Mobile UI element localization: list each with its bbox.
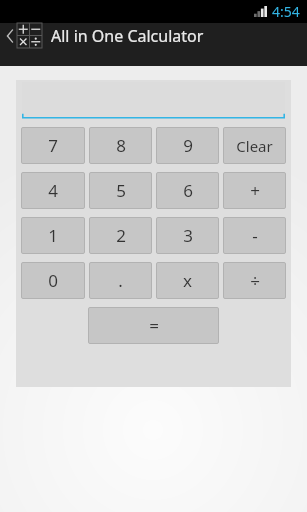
- button[interactable]: Navigate up, All in One Calculator: [6, 23, 307, 48]
- button[interactable]: 5: [89, 172, 152, 209]
- staticText: ÷: [250, 269, 260, 292]
- staticText: 5: [116, 179, 126, 202]
- button[interactable]: +: [223, 172, 286, 209]
- staticText: +: [250, 179, 260, 202]
- button[interactable]: 2: [89, 217, 152, 254]
- staticText: =: [149, 314, 159, 337]
- button[interactable]: .: [89, 262, 152, 299]
- button[interactable]: 8: [89, 127, 152, 164]
- staticText: 6: [183, 179, 193, 202]
- button[interactable]: x: [156, 262, 219, 299]
- staticText: All in One Calculator: [51, 25, 204, 47]
- staticText: 4: [48, 179, 58, 202]
- staticText: 8: [116, 134, 126, 157]
- button[interactable]: ÷: [223, 262, 286, 299]
- staticText: 4:54: [272, 2, 300, 21]
- button[interactable]: [22, 82, 285, 119]
- button[interactable]: Clear: [223, 127, 286, 164]
- staticText: 7: [48, 134, 58, 157]
- staticText: Clear: [236, 136, 273, 156]
- button[interactable]: 6: [156, 172, 219, 209]
- button[interactable]: =: [88, 307, 219, 344]
- button[interactable]: 3: [156, 217, 219, 254]
- staticText: .: [118, 269, 123, 292]
- staticText: -: [252, 224, 258, 247]
- button[interactable]: 0: [21, 262, 85, 299]
- button[interactable]: 9: [156, 127, 219, 164]
- staticText: 2: [116, 224, 126, 247]
- staticText: 3: [183, 224, 193, 247]
- staticText: 1: [48, 224, 58, 247]
- button[interactable]: -: [223, 217, 286, 254]
- staticText: 0: [48, 269, 58, 292]
- button[interactable]: 7: [21, 127, 85, 164]
- staticText: 9: [183, 134, 193, 157]
- staticText: x: [183, 269, 192, 292]
- button[interactable]: 1: [21, 217, 85, 254]
- button[interactable]: 4: [21, 172, 85, 209]
